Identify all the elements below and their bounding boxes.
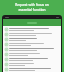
button[interactable]: Item icon	[3, 52, 61, 57]
other: Item icon	[5, 53, 8, 56]
button[interactable]: Item icon	[3, 42, 61, 47]
other: Item icon	[5, 48, 8, 51]
other: Item icon	[5, 68, 8, 71]
other: Item icon	[5, 38, 8, 41]
other: Item icon	[5, 43, 8, 46]
button[interactable]: Item icon	[3, 47, 61, 52]
button[interactable]: Item icon	[3, 62, 61, 67]
staticText: Request with focus on	[0, 3, 64, 7]
other: Item icon	[5, 28, 8, 31]
button[interactable]: Item icon	[3, 37, 61, 42]
button[interactable]: Item icon	[3, 57, 61, 62]
button[interactable]: Item icon	[3, 32, 61, 37]
other: Item icon	[5, 33, 8, 36]
button[interactable]: Item icon	[3, 27, 61, 32]
button[interactable]	[3, 19, 61, 26]
button[interactable]: Item icon	[3, 67, 61, 72]
other: Item icon	[5, 58, 8, 61]
other: Item icon	[5, 63, 8, 66]
staticText: essential function	[0, 8, 64, 12]
